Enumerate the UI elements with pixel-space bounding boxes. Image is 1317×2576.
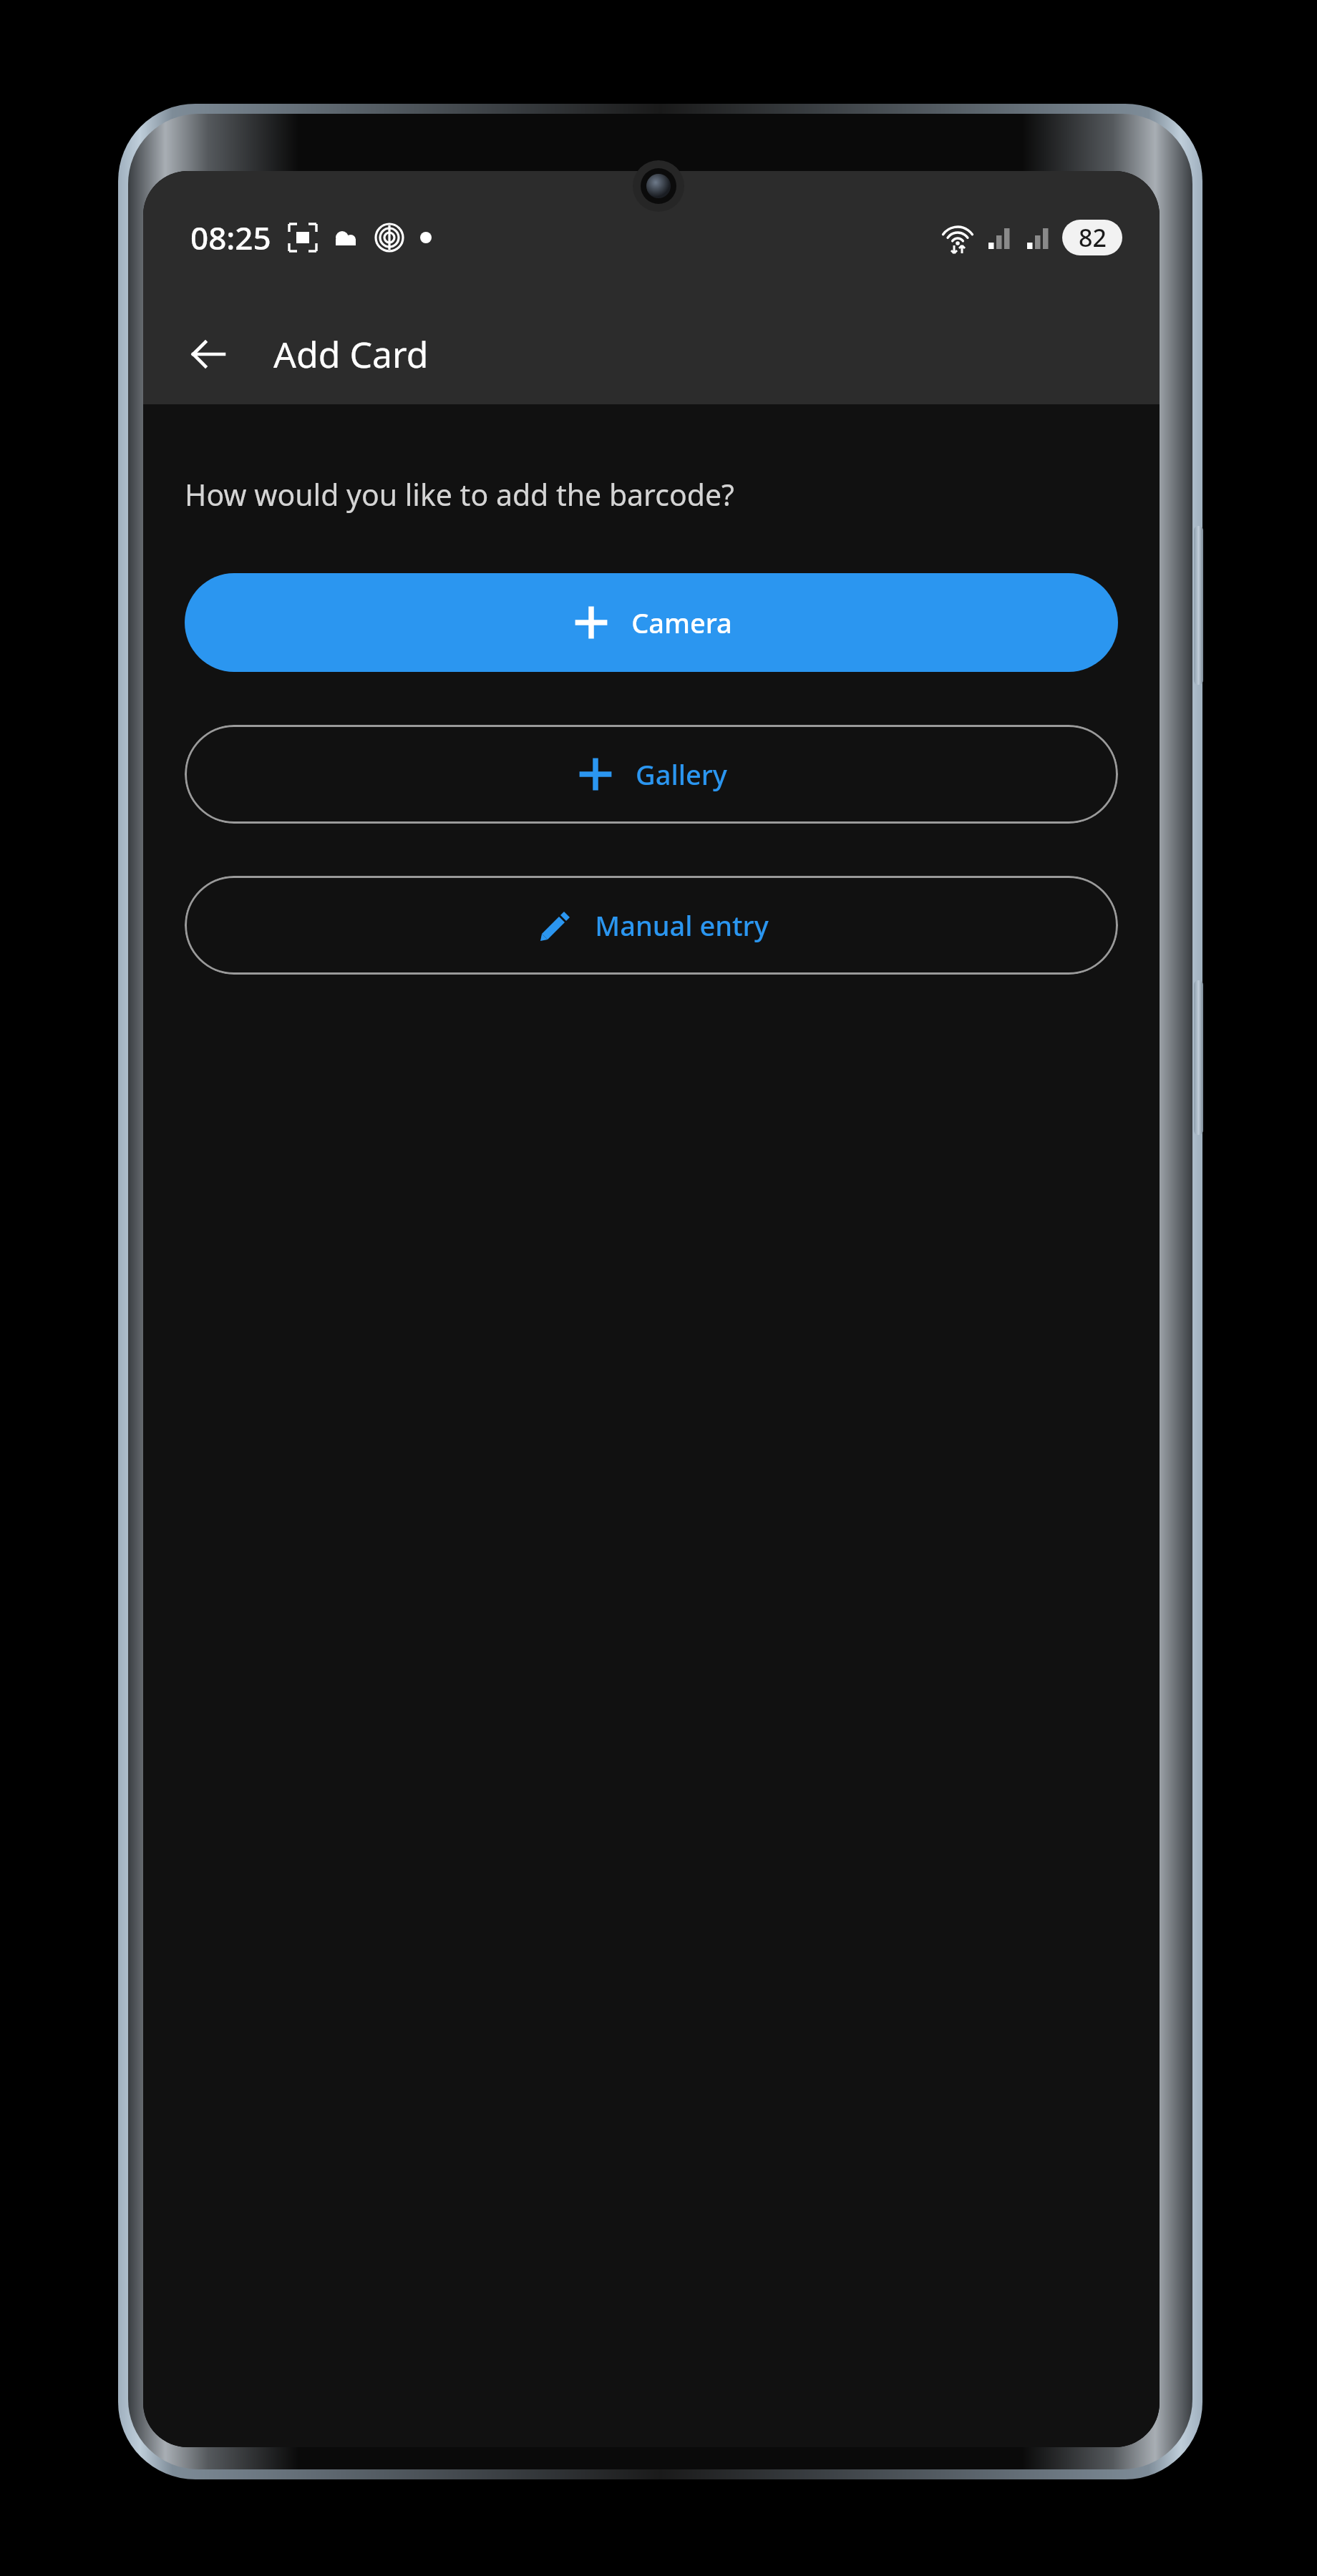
staticText: 08:25 — [190, 216, 271, 259]
staticText: Add Card — [273, 330, 429, 379]
button[interactable]: Back — [172, 317, 246, 391]
staticText: Camera — [631, 604, 732, 641]
staticText: Gallery — [636, 756, 727, 793]
button[interactable]: Gallery — [185, 725, 1118, 824]
staticText: 82 — [1079, 221, 1107, 254]
button[interactable]: Camera — [185, 573, 1118, 672]
staticText: How would you like to add the barcode? — [185, 474, 734, 514]
staticText: Manual entry — [595, 907, 769, 944]
button[interactable]: Manual entry — [185, 876, 1118, 975]
